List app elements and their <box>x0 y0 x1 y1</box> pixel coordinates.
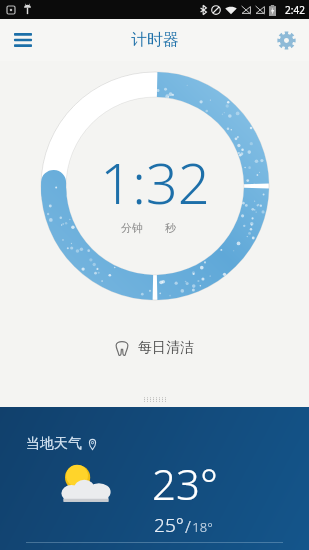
button[interactable]: Timer progress 1 minute 32 seconds <box>39 70 271 302</box>
button[interactable]: 每日清洁 <box>115 339 194 357</box>
staticText: 25° <box>154 512 184 538</box>
staticText: 每日清洁 <box>138 339 194 357</box>
staticText: 2:42 <box>285 3 305 17</box>
button[interactable]: Drag handle <box>0 391 309 407</box>
staticText: 18° <box>192 518 213 536</box>
staticText: 秒 <box>165 221 176 235</box>
staticText: / <box>185 515 191 538</box>
staticText: 当地天气 <box>26 435 82 453</box>
staticText: 1:32 <box>100 144 210 220</box>
button[interactable]: Settings <box>268 22 304 58</box>
staticText: 23° <box>152 455 218 512</box>
staticText: 计时器 <box>131 30 179 50</box>
button[interactable]: Menu <box>5 22 41 58</box>
staticText: 分钟 <box>121 221 143 235</box>
button[interactable]: 当地天气 <box>0 407 309 550</box>
